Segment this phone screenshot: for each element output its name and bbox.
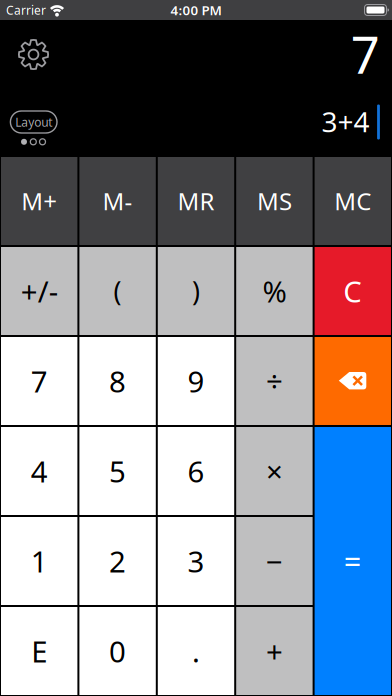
button[interactable]: M-: [79, 157, 156, 245]
staticText: 3: [187, 541, 204, 580]
button[interactable]: =: [315, 427, 391, 695]
staticText: +: [266, 631, 283, 670]
staticText: 9: [187, 361, 204, 400]
staticText: 8: [109, 361, 126, 400]
button[interactable]: 9: [158, 337, 234, 425]
staticText: M-: [103, 185, 133, 217]
staticText: C: [343, 271, 362, 310]
staticText: MR: [177, 185, 214, 217]
staticText: ÷: [266, 361, 283, 400]
staticText: E: [31, 631, 47, 670]
button[interactable]: ): [158, 247, 234, 335]
button[interactable]: .: [158, 607, 234, 695]
staticText: 6: [187, 451, 204, 490]
button[interactable]: 4: [1, 427, 77, 515]
staticText: MC: [334, 185, 371, 217]
button[interactable]: +/-: [1, 247, 77, 335]
staticText: ): [192, 273, 200, 309]
button[interactable]: 7: [1, 337, 77, 425]
staticText: 4:00 PM: [170, 1, 221, 19]
staticText: MS: [257, 185, 292, 217]
staticText: 2: [109, 541, 126, 580]
staticText: =: [344, 541, 362, 581]
staticText: 5: [109, 451, 126, 490]
staticText: %: [262, 271, 286, 310]
button[interactable]: Delete: [315, 337, 391, 425]
button[interactable]: 8: [79, 337, 156, 425]
staticText: ×: [266, 451, 283, 490]
staticText: (: [114, 273, 122, 309]
staticText: 1: [31, 541, 48, 580]
staticText: 0: [109, 631, 126, 670]
staticText: Layout: [15, 114, 52, 130]
button[interactable]: +: [236, 607, 313, 695]
button[interactable]: −: [236, 517, 313, 605]
button[interactable]: 6: [158, 427, 234, 515]
button[interactable]: Layout: [10, 111, 57, 133]
button[interactable]: MR: [158, 157, 234, 245]
button[interactable]: 1: [1, 517, 77, 605]
button[interactable]: %: [236, 247, 313, 335]
staticText: −: [266, 541, 283, 580]
staticText: 3+4: [322, 103, 370, 140]
staticText: .: [192, 631, 200, 670]
button[interactable]: ÷: [236, 337, 313, 425]
staticText: 7: [31, 361, 48, 400]
staticText: 4: [31, 451, 48, 490]
button[interactable]: MS: [236, 157, 313, 245]
button[interactable]: 0: [79, 607, 156, 695]
button[interactable]: 2: [79, 517, 156, 605]
button[interactable]: C: [315, 247, 391, 335]
staticText: M+: [21, 185, 57, 217]
staticText: Carrier: [6, 2, 46, 18]
staticText: 7: [351, 21, 380, 88]
button[interactable]: 5: [79, 427, 156, 515]
button[interactable]: E: [1, 607, 77, 695]
button[interactable]: (: [79, 247, 156, 335]
button[interactable]: 3: [158, 517, 234, 605]
staticText: +/-: [21, 271, 58, 310]
button[interactable]: ×: [236, 427, 313, 515]
button[interactable]: MC: [315, 157, 391, 245]
button[interactable]: Settings: [13, 34, 53, 74]
button[interactable]: M+: [1, 157, 77, 245]
